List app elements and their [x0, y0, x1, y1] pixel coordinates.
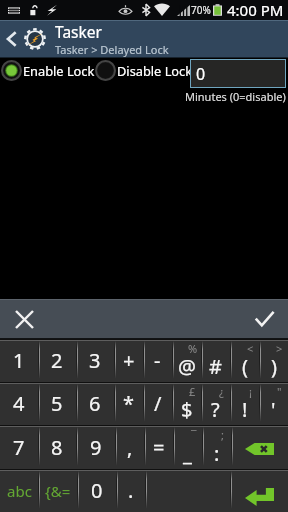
staticText: Tasker > Delayed Lock — [55, 42, 169, 57]
staticText: ! — [242, 396, 248, 423]
button[interactable]: Done — [240, 299, 288, 339]
staticText: . — [128, 477, 134, 504]
staticText: # — [209, 353, 222, 380]
staticText: % — [188, 341, 198, 356]
staticText: < — [247, 341, 254, 356]
staticText: - — [154, 347, 161, 374]
button[interactable]: 9 — [76, 427, 115, 469]
staticText: ¡ — [249, 384, 252, 399]
staticText: ' — [271, 396, 276, 423]
button[interactable]: Cancel — [0, 299, 48, 339]
staticText: = — [153, 434, 165, 461]
staticText: " — [277, 384, 282, 399]
staticText: 6 — [89, 390, 101, 417]
button[interactable]: ) — [259, 341, 288, 382]
button[interactable]: 8 — [38, 427, 76, 469]
staticText: {&= — [45, 481, 71, 501]
staticText: / — [154, 390, 162, 417]
staticText: ; — [221, 427, 224, 442]
staticText: 7 — [13, 434, 25, 461]
button[interactable]: , — [115, 427, 144, 469]
button[interactable]: / — [143, 384, 172, 425]
staticText: Enable Lock — [23, 62, 95, 79]
staticText: , — [127, 434, 133, 461]
staticText: > — [276, 341, 283, 356]
staticText: 8 — [51, 434, 63, 461]
button[interactable]: 1 — [0, 341, 38, 382]
button[interactable]: 2 — [38, 341, 76, 382]
staticText: @ — [178, 353, 196, 380]
staticText: 4:00 PM — [227, 0, 284, 20]
staticText: + — [123, 347, 135, 374]
staticText: 1 — [13, 347, 25, 374]
button[interactable]: . — [116, 471, 145, 512]
staticText: £ — [189, 384, 196, 399]
button[interactable]: 0 — [77, 471, 116, 512]
staticText: $ — [181, 396, 193, 423]
button[interactable]: Navigate up — [0, 21, 23, 57]
staticText: 0 — [196, 63, 206, 85]
button[interactable]: Backspace — [231, 427, 288, 469]
staticText: 0 — [91, 477, 103, 504]
button[interactable]: Enter — [230, 471, 288, 512]
button[interactable]: 7 — [0, 427, 38, 469]
staticText: 70% — [191, 3, 211, 17]
button[interactable]: * — [114, 384, 143, 425]
button[interactable]: $ — [172, 384, 201, 425]
button[interactable]: 5 — [38, 384, 76, 425]
button[interactable]: + — [114, 341, 143, 382]
button[interactable]: 3 — [76, 341, 114, 382]
button[interactable]: ' — [259, 384, 288, 425]
staticText: ¯ — [191, 427, 197, 442]
staticText: ) — [271, 353, 277, 380]
staticText: 9 — [90, 434, 102, 461]
button[interactable]: 6 — [76, 384, 114, 425]
staticText: 2 — [51, 347, 63, 374]
button[interactable]: @ — [172, 341, 201, 382]
staticText: abc — [7, 481, 32, 501]
button[interactable]: {&= — [38, 471, 77, 512]
staticText: _ — [183, 440, 192, 467]
button[interactable]: Disable Lock — [95, 60, 193, 81]
button[interactable]: abc — [0, 471, 38, 512]
staticText: ¿ — [219, 384, 224, 399]
staticText: 3 — [89, 347, 101, 374]
button[interactable]: : — [202, 427, 231, 469]
staticText: Disable Lock — [117, 62, 193, 79]
button[interactable] — [145, 471, 230, 512]
button[interactable]: Enable Lock — [1, 60, 95, 81]
button[interactable]: 0 — [190, 59, 286, 88]
staticText: 4 — [13, 390, 25, 417]
staticText: ( — [242, 353, 248, 380]
other: Enter — [245, 488, 274, 504]
button[interactable]: ( — [230, 341, 259, 382]
staticText: 5 — [51, 390, 63, 417]
staticText: * — [123, 390, 135, 417]
button[interactable]: ? — [201, 384, 230, 425]
staticText: : — [214, 440, 220, 467]
other: Backspace — [245, 443, 274, 455]
button[interactable]: - — [143, 341, 172, 382]
staticText: Tasker — [55, 21, 102, 42]
staticText: ? — [211, 396, 220, 423]
button[interactable]: = — [144, 427, 173, 469]
button[interactable]: ! — [230, 384, 259, 425]
button[interactable]: _ — [173, 427, 202, 469]
button[interactable]: # — [201, 341, 230, 382]
staticText: Minutes (0=disable) — [185, 89, 286, 104]
button[interactable]: 4 — [0, 384, 38, 425]
